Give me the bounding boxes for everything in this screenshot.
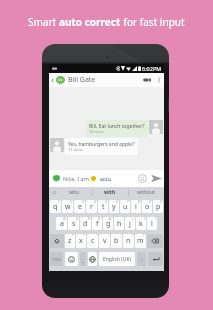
staticText: % (98, 217, 101, 221)
staticText: auto correct (59, 15, 121, 29)
button[interactable]: f (92, 217, 102, 230)
button[interactable]: i (131, 200, 141, 213)
staticText: t (102, 202, 105, 212)
staticText: ! (132, 234, 133, 238)
staticText: a (60, 219, 64, 229)
button[interactable]: with (92, 187, 128, 198)
staticText: w (65, 202, 71, 212)
button[interactable]: x (76, 234, 86, 248)
staticText: Bill, Eat lunch together? (89, 123, 145, 130)
button[interactable]: without (128, 187, 164, 198)
button[interactable]: s (68, 217, 79, 230)
button[interactable]: h (114, 217, 124, 230)
staticText: 11 mins (68, 147, 83, 152)
button[interactable]: g (103, 217, 113, 230)
button[interactable]: Backspace (147, 234, 163, 248)
button[interactable]: m (135, 234, 146, 248)
button[interactable]: Comma (80, 252, 86, 266)
staticText: y (112, 202, 116, 212)
staticText: f (96, 219, 99, 229)
staticText: Yes, hamburgers and apple? (68, 141, 135, 148)
button[interactable]: Send (151, 173, 162, 184)
button[interactable]: Back (49, 73, 56, 87)
staticText: 0 (160, 200, 162, 204)
button[interactable]: y (109, 200, 119, 213)
staticText: b (114, 236, 119, 246)
staticText: k (139, 219, 143, 229)
staticText: * (72, 234, 74, 238)
button[interactable]: a (56, 217, 67, 230)
staticText: c (91, 236, 95, 246)
button[interactable]: b (111, 234, 122, 248)
button[interactable]: n (123, 234, 134, 248)
staticText: 7 (127, 200, 129, 204)
staticText: # (76, 217, 78, 221)
button[interactable]: c (87, 234, 98, 248)
button[interactable]: v (99, 234, 110, 248)
button[interactable]: u (120, 200, 130, 213)
staticText: g (106, 219, 111, 229)
button[interactable]: Video call (140, 73, 154, 87)
staticText: for fast input (121, 15, 185, 29)
button[interactable]: Shift (50, 234, 64, 248)
button[interactable] (88, 252, 97, 266)
staticText: u (123, 202, 128, 212)
staticText: z (68, 236, 72, 246)
button[interactable]: Symbols (50, 252, 63, 266)
staticText: $ (88, 217, 90, 221)
staticText: q (53, 202, 58, 212)
staticText: Smart (28, 15, 59, 29)
staticText: Nice, I am (63, 175, 91, 182)
button[interactable]: z (65, 234, 75, 248)
staticText: 4 (94, 200, 96, 204)
button[interactable]: r (86, 200, 97, 213)
staticText: : (108, 234, 109, 238)
staticText: with (104, 189, 116, 196)
staticText: 8 (138, 200, 140, 204)
staticText: 1 (58, 200, 60, 204)
button[interactable]: w (62, 200, 73, 213)
button[interactable]: q (50, 200, 61, 213)
staticText: p (156, 202, 161, 212)
staticText: 15 mins (89, 129, 104, 134)
staticText: witu (100, 175, 137, 182)
staticText: ? (143, 234, 145, 238)
button[interactable]: Space (99, 252, 135, 266)
staticText: & (109, 217, 112, 221)
staticText: ) (155, 217, 156, 221)
staticText: ; (120, 234, 121, 238)
staticText: - (122, 217, 123, 221)
button[interactable]: l (147, 217, 157, 230)
button[interactable]: More options (154, 73, 164, 87)
button[interactable]: Period (137, 252, 146, 266)
staticText: ( (144, 217, 145, 221)
staticText: 6:02PM (142, 65, 162, 72)
staticText: e (78, 202, 82, 212)
button[interactable]: p (153, 200, 163, 213)
staticText: o (145, 202, 150, 212)
button[interactable]: d (80, 217, 91, 230)
button[interactable]: j (125, 217, 135, 230)
staticText: 3 (82, 200, 84, 204)
staticText: ' (96, 234, 97, 238)
staticText: l (151, 219, 153, 229)
button[interactable]: k (136, 217, 146, 230)
staticText: . (141, 255, 143, 263)
staticText: h (117, 219, 122, 229)
button[interactable]: t (98, 200, 108, 213)
button[interactable]: o (142, 200, 152, 213)
staticText: s (72, 219, 76, 229)
button[interactable]: Emoji (137, 173, 148, 184)
staticText: x (79, 236, 83, 246)
staticText: 5 (105, 200, 107, 204)
button[interactable]: Enter (148, 252, 163, 266)
button[interactable]: witu (57, 187, 92, 198)
staticText: 9 (149, 200, 151, 204)
staticText: Bill Gate (68, 75, 140, 85)
staticText: r (90, 202, 93, 212)
staticText: i (135, 202, 137, 212)
staticText: v (103, 236, 107, 246)
button[interactable] (65, 252, 78, 266)
staticText: without (137, 189, 156, 196)
button[interactable]: e (74, 200, 85, 213)
